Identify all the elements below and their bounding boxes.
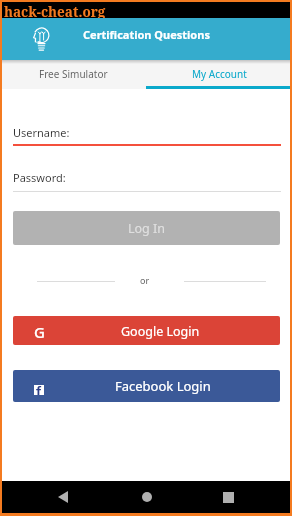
- staticText: My Account: [192, 67, 247, 81]
- staticText: Facebook Login: [115, 377, 211, 395]
- staticText: Certification Questions: [83, 27, 210, 42]
- staticText: hack-cheat.org: [4, 3, 106, 21]
- staticText: G: [34, 322, 45, 342]
- staticText: Google Login: [121, 323, 200, 340]
- staticText: or: [140, 274, 150, 286]
- button[interactable]: My Account: [146, 59, 292, 88]
- button[interactable]: G: [13, 316, 280, 345]
- staticText: Log In: [128, 220, 166, 237]
- button[interactable]: Facebook Login: [13, 370, 280, 402]
- button[interactable]: Back: [44, 481, 81, 513]
- staticText: Free Simulator: [39, 67, 108, 81]
- button[interactable]: Recent apps: [210, 481, 247, 513]
- button[interactable]: Log In: [13, 211, 280, 245]
- button[interactable]: Home: [128, 481, 165, 513]
- staticText: Username:: [13, 125, 70, 140]
- button[interactable]: Free Simulator: [0, 59, 146, 88]
- staticText: Password:: [13, 170, 66, 185]
